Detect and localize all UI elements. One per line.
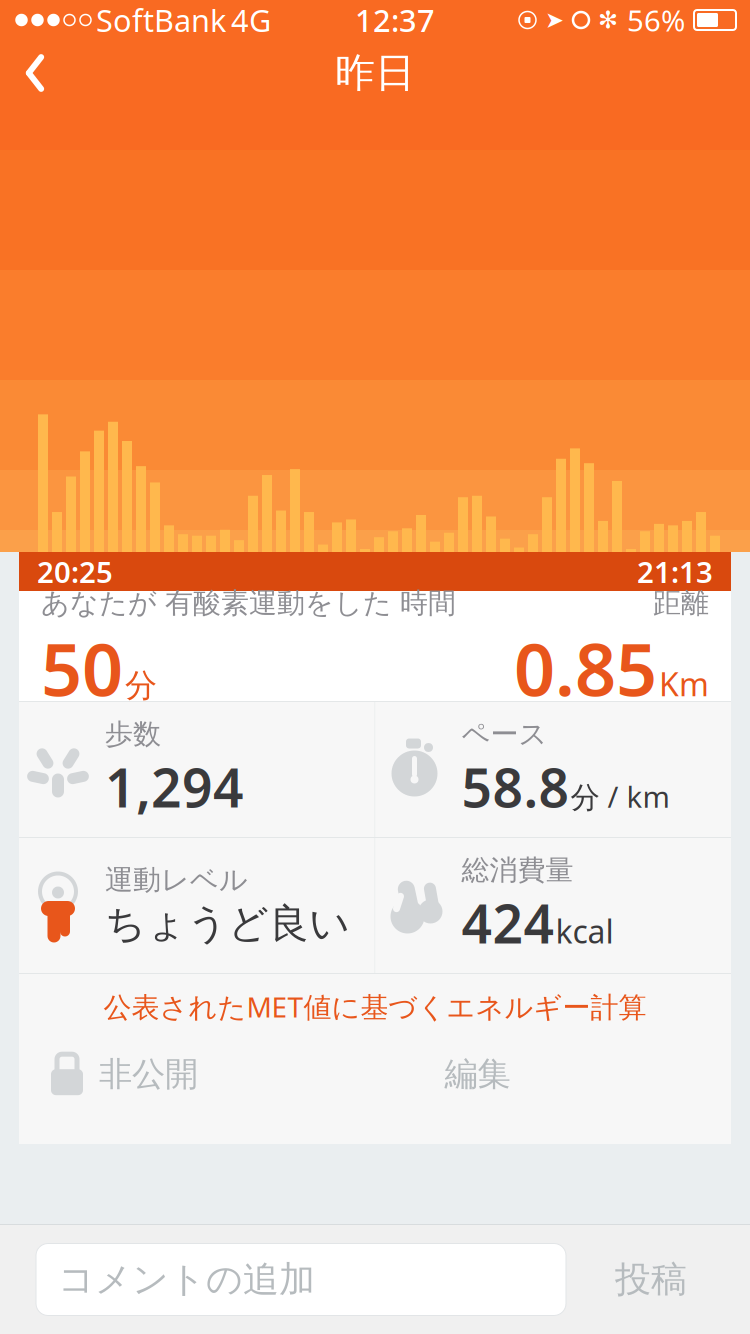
button[interactable]: コメントの追加 bbox=[36, 1243, 566, 1315]
staticText: 1,294 bbox=[105, 751, 244, 822]
staticText: Km bbox=[659, 662, 709, 705]
staticText: 運動レベル bbox=[105, 863, 248, 897]
staticText: 投稿 bbox=[615, 1257, 687, 1302]
staticText: kcal bbox=[555, 910, 613, 952]
staticText: 公表されたMET値に基づくエネルギー計算 bbox=[103, 988, 646, 1025]
staticText: 12:37 bbox=[355, 0, 435, 40]
button[interactable]: 非公開 bbox=[19, 1039, 224, 1109]
staticText: 58.8 bbox=[461, 751, 569, 822]
staticText: 昨日 bbox=[335, 48, 415, 97]
staticText: 歩数 bbox=[105, 717, 161, 751]
staticText: 424 bbox=[461, 887, 554, 958]
staticText: 分 bbox=[125, 666, 157, 705]
staticText: 21:13 bbox=[637, 552, 713, 591]
staticText: 50 bbox=[41, 620, 123, 716]
staticText: 20:25 bbox=[37, 552, 113, 591]
staticText: 4G bbox=[231, 0, 271, 40]
staticText: 距離 bbox=[653, 586, 709, 620]
button[interactable]: 編集 bbox=[402, 1039, 552, 1109]
staticText: 0.85 bbox=[514, 620, 657, 716]
staticText: ペース bbox=[461, 717, 547, 751]
staticText: 分 / km bbox=[570, 777, 669, 816]
staticText: あなたが 有酸素運動をした 時間 bbox=[41, 586, 456, 620]
staticText: ➤ bbox=[545, 7, 564, 33]
staticText: ちょうど良い bbox=[105, 899, 350, 948]
button[interactable]: 戻る bbox=[0, 40, 70, 106]
staticText: 総消費量 bbox=[461, 853, 573, 887]
staticText: コメントの追加 bbox=[58, 1257, 315, 1302]
button[interactable]: 投稿 bbox=[566, 1234, 736, 1324]
staticText: 56% bbox=[627, 0, 685, 39]
button[interactable]: 公表されたMET値に基づくエネルギー計算 bbox=[19, 974, 731, 1039]
staticText: ✻ bbox=[598, 6, 618, 34]
staticText: SoftBank bbox=[96, 0, 226, 40]
staticText: 非公開 bbox=[99, 1054, 198, 1095]
staticText: 編集 bbox=[444, 1054, 510, 1095]
